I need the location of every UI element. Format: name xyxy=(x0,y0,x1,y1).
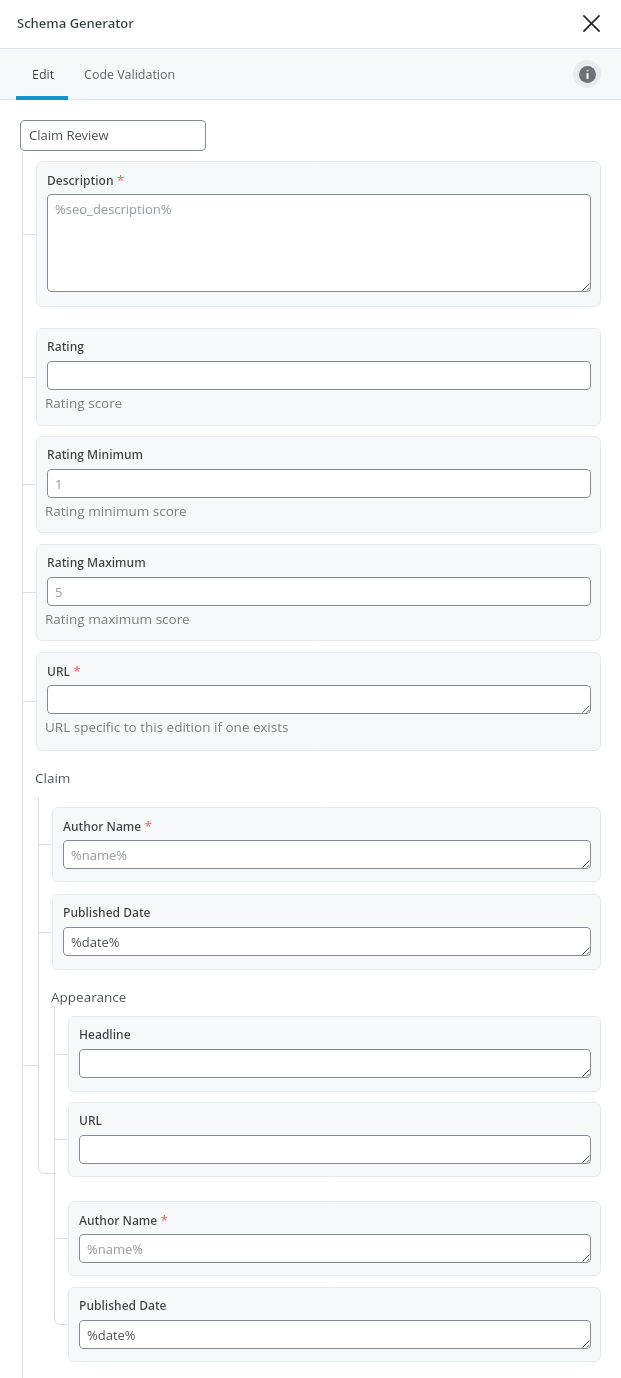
button[interactable]: URL * xyxy=(36,652,601,751)
staticText: Author Name * xyxy=(63,817,152,835)
staticText: Rating minimum score xyxy=(45,502,187,520)
staticText: Schema Generator xyxy=(17,14,134,32)
button[interactable]: %date% xyxy=(79,1320,591,1349)
button[interactable]: Info xyxy=(573,60,601,88)
staticText: URL xyxy=(79,1112,103,1128)
staticText: Published Date xyxy=(63,904,151,920)
button[interactable]: URL xyxy=(68,1102,601,1177)
button[interactable]: Rating Minimum xyxy=(36,436,601,533)
staticText: 5 xyxy=(55,583,63,601)
button[interactable]: Published Date xyxy=(68,1287,601,1362)
button[interactable] xyxy=(79,1135,591,1164)
staticText: %name% xyxy=(71,846,127,864)
button[interactable] xyxy=(47,685,591,714)
staticText: URL * xyxy=(47,662,81,680)
staticText: Code Validation xyxy=(84,66,176,83)
staticText: 1 xyxy=(55,475,63,493)
button[interactable]: 1 xyxy=(47,469,591,498)
staticText: Rating maximum score xyxy=(45,610,190,628)
button[interactable]: Code Validation xyxy=(71,55,192,94)
button[interactable]: Claim Review xyxy=(20,120,206,151)
button[interactable]: 5 xyxy=(47,577,591,606)
staticText: Description * xyxy=(47,171,125,189)
staticText: %date% xyxy=(71,933,120,951)
button[interactable]: Rating Maximum xyxy=(36,544,601,641)
staticText: Appearance xyxy=(51,988,127,1006)
staticText: %name% xyxy=(87,1240,143,1258)
button[interactable]: %date% xyxy=(63,927,591,956)
button[interactable]: %seo_description% xyxy=(47,194,591,292)
button[interactable]: Description * xyxy=(36,161,601,307)
staticText: Rating xyxy=(47,338,84,354)
staticText: Rating score xyxy=(45,394,123,412)
staticText: Rating Maximum xyxy=(47,554,146,570)
staticText: Edit xyxy=(32,66,55,83)
staticText: Claim Review xyxy=(29,126,109,144)
staticText: Rating Minimum xyxy=(47,446,144,462)
button[interactable]: %name% xyxy=(79,1234,591,1263)
button[interactable]: Edit xyxy=(0,55,71,94)
button[interactable]: Headline xyxy=(68,1016,601,1092)
button[interactable]: Author Name * xyxy=(68,1201,601,1276)
staticText: Author Name * xyxy=(79,1211,168,1229)
staticText: URL specific to this edition if one exis… xyxy=(45,718,289,736)
staticText: %date% xyxy=(87,1326,136,1344)
button[interactable]: Rating xyxy=(36,328,601,426)
button[interactable] xyxy=(47,361,591,390)
button[interactable]: Published Date xyxy=(52,894,601,970)
button[interactable] xyxy=(79,1049,591,1078)
staticText: Published Date xyxy=(79,1297,167,1313)
staticText: Headline xyxy=(79,1026,131,1042)
staticText: Claim xyxy=(35,769,71,787)
staticText: %seo_description% xyxy=(55,200,172,218)
button[interactable]: Author Name * xyxy=(52,807,601,882)
button[interactable]: %name% xyxy=(63,840,591,869)
button[interactable]: Close xyxy=(570,2,612,44)
